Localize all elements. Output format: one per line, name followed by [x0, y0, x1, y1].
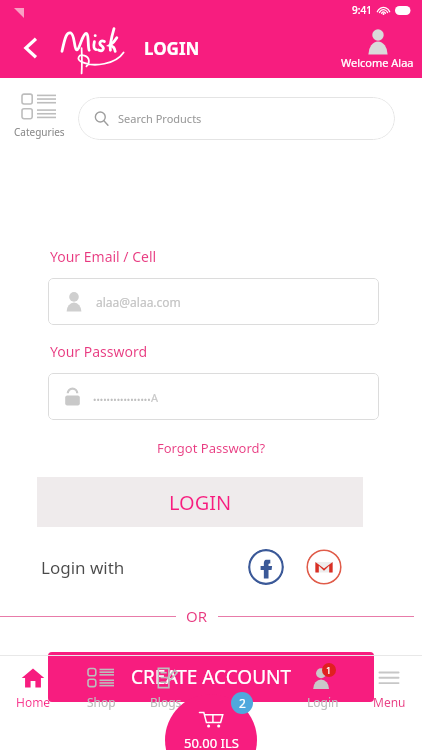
- button[interactable]: Misk logo: [58, 20, 138, 74]
- staticText: Home: [16, 694, 51, 710]
- staticText: OR: [186, 606, 208, 626]
- button[interactable]: Welcome Alaa: [341, 28, 414, 70]
- button[interactable]: 1: [292, 663, 354, 712]
- button[interactable]: Categuries: [0, 92, 78, 139]
- button[interactable]: Login with Gmail: [306, 549, 342, 585]
- button[interactable]: Login with Facebook: [248, 549, 284, 585]
- button[interactable]: Home: [0, 663, 66, 712]
- staticText: •••••••••••••••••: [93, 393, 151, 405]
- staticText: alaa@alaa.com: [96, 294, 181, 310]
- button[interactable]: Search Products: [78, 97, 395, 140]
- staticText: 9:41: [352, 3, 372, 17]
- staticText: Your Password: [50, 342, 148, 361]
- staticText: Menu: [373, 694, 406, 710]
- button[interactable]: Blogs: [135, 663, 197, 712]
- staticText: Welcome Alaa: [341, 55, 414, 70]
- button[interactable]: alaa@alaa.com: [48, 278, 379, 325]
- staticText: A: [151, 390, 159, 405]
- staticText: Blogs: [150, 694, 182, 710]
- button[interactable]: Cart: [165, 694, 257, 750]
- button[interactable]: Shop: [68, 663, 134, 712]
- button[interactable]: LOGIN: [37, 477, 363, 527]
- button[interactable]: CREATE ACCOUNT: [48, 652, 374, 702]
- button[interactable]: •••••••••••••••••: [48, 373, 379, 420]
- staticText: Search Products: [118, 111, 202, 126]
- staticText: Shop: [87, 694, 116, 710]
- button[interactable]: Forgot Password?: [157, 439, 266, 457]
- staticText: 1: [326, 664, 332, 676]
- staticText: CREATE ACCOUNT: [131, 664, 292, 690]
- button[interactable]: Back: [12, 28, 52, 68]
- staticText: Login with: [41, 556, 125, 579]
- staticText: Categuries: [14, 125, 65, 139]
- staticText: LOGIN: [169, 489, 232, 516]
- staticText: 2: [239, 695, 246, 711]
- button[interactable]: Menu: [356, 663, 422, 712]
- staticText: LOGIN: [144, 37, 200, 60]
- staticText: Login: [307, 694, 339, 710]
- staticText: 50.00 ILS: [184, 734, 239, 750]
- staticText: Your Email / Cell: [50, 247, 157, 266]
- staticText: Forgot Password?: [157, 439, 266, 457]
